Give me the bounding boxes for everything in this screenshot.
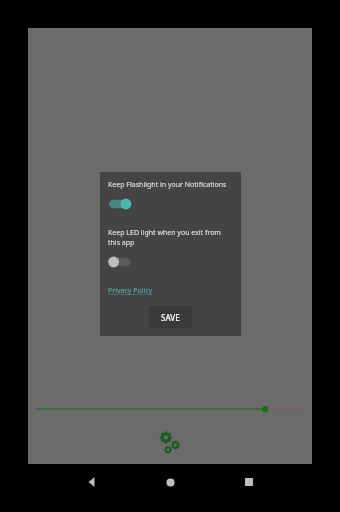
button[interactable]: On xyxy=(108,196,138,212)
staticText: Keep Flashlight in your Notifications xyxy=(108,180,227,190)
button[interactable]: Home xyxy=(155,467,185,497)
button[interactable]: Brightness slider xyxy=(28,401,312,417)
button[interactable]: Privacy Policy xyxy=(108,286,153,296)
button[interactable]: SAVE xyxy=(149,306,192,328)
button[interactable]: Settings xyxy=(153,426,187,460)
staticText: Keep LED light when you exit from this a… xyxy=(108,228,233,248)
button[interactable]: Recents xyxy=(234,467,264,497)
staticText: SAVE xyxy=(161,312,180,323)
staticText: Privacy Policy xyxy=(108,286,153,296)
button[interactable]: Back xyxy=(77,467,107,497)
button[interactable]: Off xyxy=(108,254,138,270)
